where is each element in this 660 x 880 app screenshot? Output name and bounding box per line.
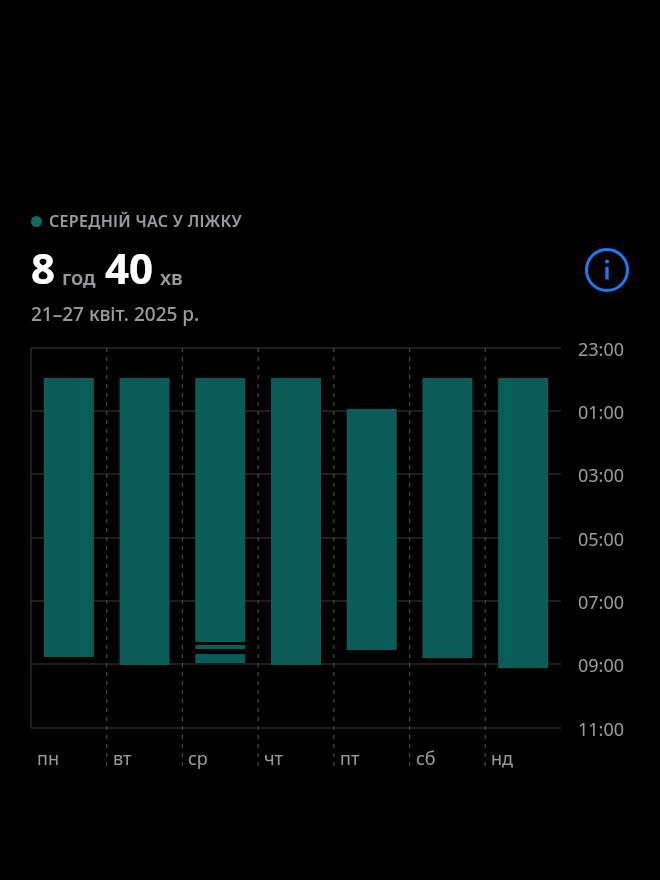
staticText: ср [188, 746, 208, 771]
staticText: 01:00 [578, 400, 625, 425]
staticText: 23:00 [578, 337, 625, 362]
staticText: пн [37, 746, 59, 771]
staticText: 05:00 [578, 527, 625, 552]
staticText: 09:00 [578, 653, 625, 678]
staticText: год [62, 264, 96, 291]
staticText: пт [340, 746, 360, 771]
staticText: 07:00 [578, 590, 625, 615]
staticText: нд [491, 746, 513, 771]
staticText: хв [160, 264, 183, 291]
staticText: 03:00 [578, 463, 625, 488]
staticText: СЕРЕДНІЙ ЧАС У ЛІЖКУ [49, 210, 242, 232]
staticText: 40 [105, 239, 154, 296]
staticText: 21–27 квіт. 2025 р. [31, 301, 200, 327]
staticText: вт [113, 746, 132, 771]
staticText: чт [264, 746, 283, 771]
button[interactable]: Інформація [586, 249, 628, 291]
staticText: 11:00 [578, 717, 625, 742]
staticText: сб [416, 746, 436, 771]
staticText: 8 [31, 239, 56, 296]
